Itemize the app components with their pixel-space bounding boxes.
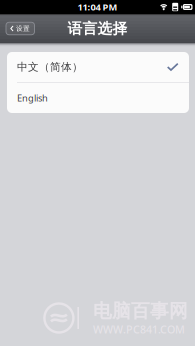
staticText: 设置 xyxy=(16,24,30,33)
staticText: 电脑百事网 xyxy=(93,299,188,322)
staticText: English xyxy=(17,92,48,104)
staticText: WWW.PC841.COM xyxy=(93,322,185,337)
staticText: 11:04 PM xyxy=(77,1,117,13)
staticText: 语言选择 xyxy=(67,19,127,37)
button[interactable]: English xyxy=(7,83,189,113)
button[interactable]: 设置 xyxy=(6,22,34,35)
staticText: 中文（简体） xyxy=(17,60,83,73)
button[interactable]: 中文（简体） xyxy=(7,52,189,82)
